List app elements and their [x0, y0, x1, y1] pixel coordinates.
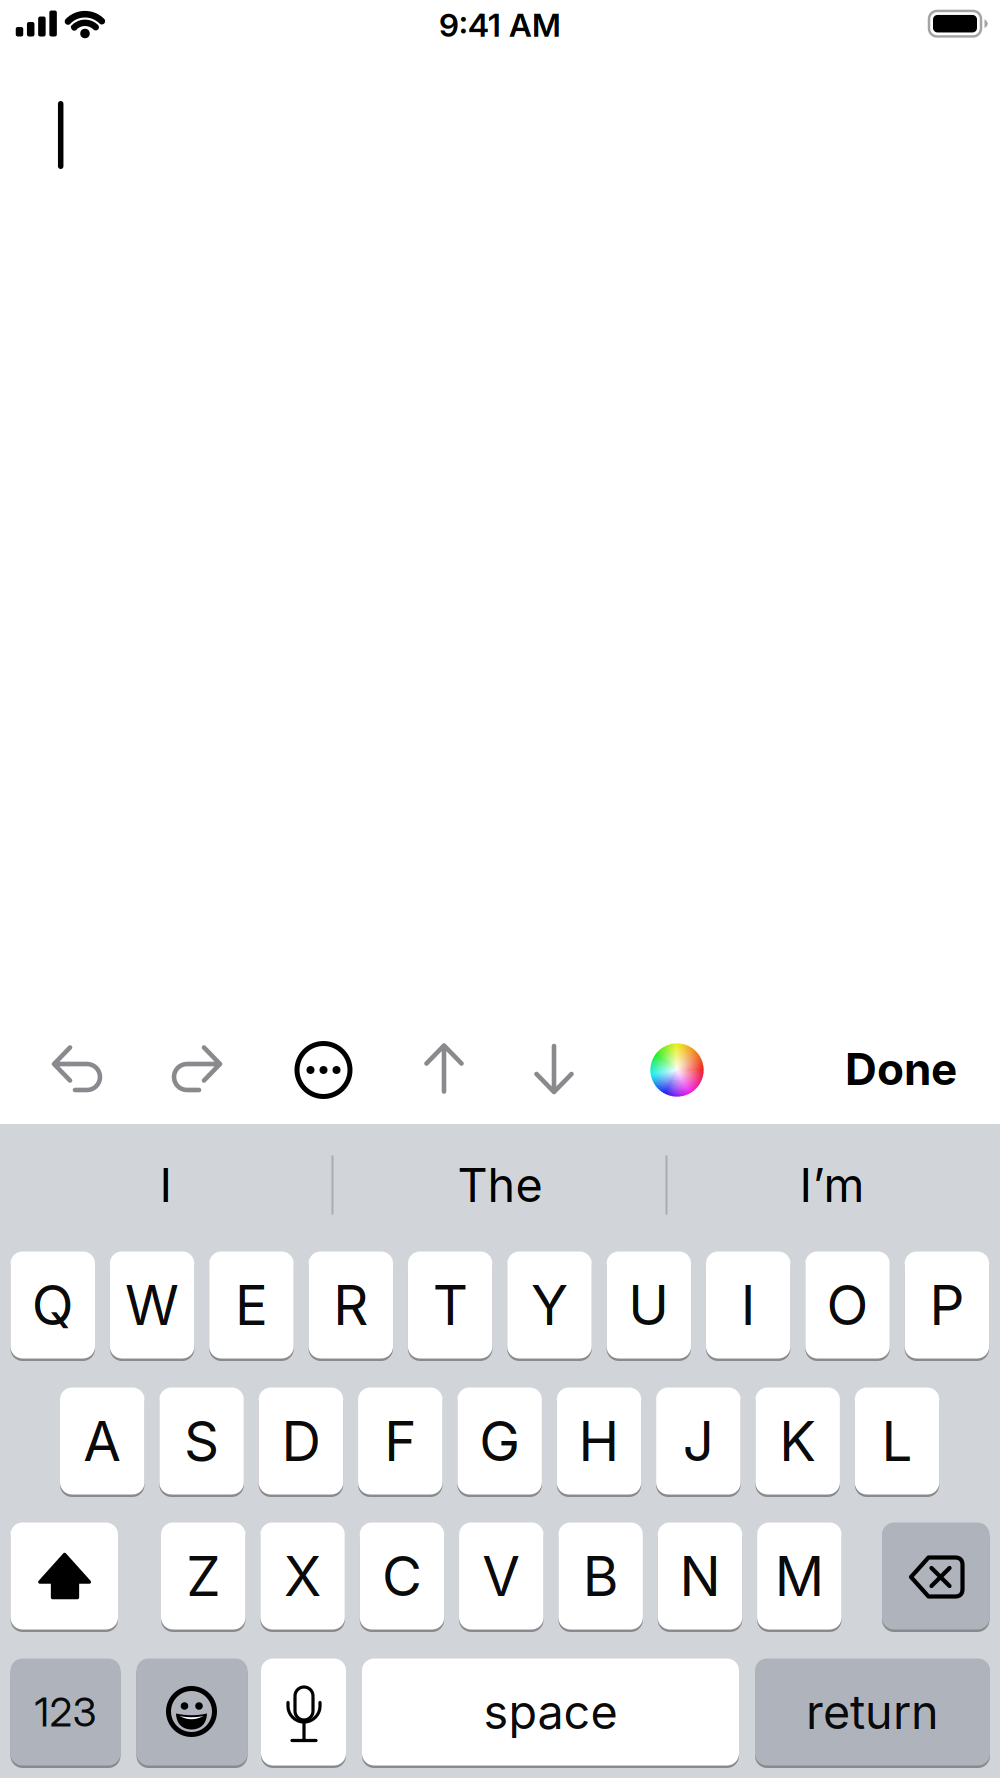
staticText: N — [679, 1544, 720, 1608]
staticText: K — [779, 1409, 816, 1473]
staticText: D — [281, 1409, 320, 1473]
staticText: W — [125, 1273, 179, 1337]
staticText: E — [235, 1273, 268, 1337]
staticText: C — [382, 1544, 422, 1608]
staticText: L — [881, 1409, 912, 1473]
staticText: O — [826, 1273, 868, 1337]
staticText: space — [483, 1684, 617, 1740]
staticText: B — [583, 1544, 619, 1608]
staticText: F — [384, 1409, 416, 1473]
staticText: The — [457, 1157, 542, 1213]
staticText: Y — [531, 1273, 568, 1337]
staticText: X — [284, 1544, 321, 1608]
staticText: A — [83, 1409, 121, 1473]
staticText: Done — [845, 1043, 957, 1095]
staticText: Z — [186, 1544, 220, 1608]
staticText: P — [929, 1273, 964, 1337]
staticText: Q — [32, 1273, 74, 1337]
staticText: G — [479, 1409, 520, 1473]
staticText: S — [184, 1409, 219, 1473]
staticText: V — [482, 1544, 520, 1608]
staticText: H — [578, 1409, 619, 1473]
staticText: I — [159, 1157, 172, 1213]
staticText: return — [806, 1684, 939, 1740]
staticText: 123 — [34, 1688, 96, 1736]
staticText: I’m — [799, 1157, 864, 1213]
staticText: R — [333, 1273, 368, 1337]
staticText: J — [683, 1409, 714, 1473]
staticText: I — [741, 1273, 756, 1337]
staticText: M — [775, 1544, 824, 1608]
staticText: U — [628, 1273, 669, 1337]
staticText: T — [433, 1273, 468, 1337]
staticText: 9:41 AM — [439, 6, 561, 44]
